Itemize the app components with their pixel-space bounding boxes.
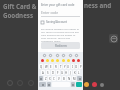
button[interactable]: K — [73, 70, 76, 75]
staticText: T — [60, 65, 62, 69]
button[interactable]: W — [44, 64, 48, 69]
button[interactable]: I — [71, 64, 74, 69]
staticText: Redeem — [55, 44, 67, 48]
staticText: Q — [40, 65, 43, 69]
button[interactable]: Emoji — [77, 59, 80, 62]
button[interactable]: Comma — [47, 82, 51, 87]
staticText: L — [78, 71, 80, 75]
button[interactable]: Emoji — [72, 59, 75, 62]
button[interactable]: Redeem — [41, 42, 80, 49]
button[interactable]: A — [41, 70, 45, 75]
staticText: A — [42, 71, 44, 75]
button[interactable]: O — [75, 64, 78, 69]
staticText: Z — [45, 77, 47, 81]
button[interactable]: C — [52, 76, 56, 81]
staticText: I — [72, 65, 73, 69]
staticText: J — [70, 71, 71, 75]
staticText: H — [65, 71, 68, 75]
button[interactable]: Enter — [76, 82, 82, 87]
button[interactable]: G — [61, 70, 64, 75]
staticText: By clicking Redeem you agree to our term… — [41, 27, 80, 42]
button[interactable]: R — [54, 64, 58, 69]
button[interactable]: Emoji — [41, 59, 44, 62]
button[interactable]: Emoji — [51, 59, 54, 62]
button[interactable]: S — [46, 70, 50, 75]
button[interactable]: Tool 2 — [56, 54, 59, 57]
button[interactable]: Y — [63, 64, 66, 69]
staticText: Goodness — [3, 11, 34, 19]
staticText: B — [63, 77, 65, 81]
button[interactable]: N — [67, 76, 71, 81]
staticText: Y — [64, 65, 66, 69]
button[interactable]: Emoji — [56, 59, 59, 62]
button[interactable]: P — [79, 64, 82, 69]
staticText: V — [58, 77, 60, 81]
staticText: M — [73, 77, 76, 81]
button[interactable]: E — [49, 64, 53, 69]
staticText: S — [47, 71, 49, 75]
staticText: R — [55, 65, 57, 69]
button[interactable]: Saving/Account — [41, 20, 80, 24]
button[interactable]: Tool 3 — [62, 54, 65, 57]
button[interactable]: T — [59, 64, 62, 69]
button[interactable]: Tool 5 — [75, 54, 78, 57]
button[interactable]: J — [69, 70, 72, 75]
button[interactable]: Q — [39, 64, 43, 69]
button[interactable]: D — [51, 70, 55, 75]
button[interactable]: Numbers — [39, 82, 46, 87]
staticText: P — [80, 65, 82, 69]
button[interactable]: X — [48, 76, 51, 81]
button[interactable]: F — [56, 70, 60, 75]
button[interactable]: Tool 1 — [49, 54, 52, 57]
staticText: N — [68, 77, 71, 81]
button[interactable]: Backspace — [77, 76, 82, 81]
staticText: U — [67, 65, 70, 69]
staticText: D — [52, 71, 55, 75]
staticText: Gift Card & — [3, 2, 37, 10]
button[interactable]: Z — [44, 76, 47, 81]
button[interactable]: Tool 4 — [69, 54, 72, 57]
staticText: Saving/Account — [46, 20, 68, 24]
staticText: X — [49, 77, 51, 81]
staticText: O — [75, 65, 78, 69]
staticText: C — [53, 77, 55, 81]
button[interactable]: Tool 0 — [43, 54, 46, 57]
staticText: Enter code — [41, 10, 59, 15]
button[interactable]: B — [62, 76, 66, 81]
button[interactable]: Enter code — [41, 10, 80, 17]
staticText: K — [74, 71, 76, 75]
staticText: E — [50, 65, 52, 69]
staticText: Enter your gift card code — [41, 3, 75, 7]
button[interactable]: Emoji — [109, 34, 118, 43]
staticText: ness and — [84, 1, 112, 9]
button[interactable]: Emoji — [62, 59, 65, 62]
staticText: G — [61, 71, 64, 75]
button[interactable]: Emoji — [67, 59, 70, 62]
button[interactable]: M — [72, 76, 76, 81]
button[interactable]: Period — [71, 82, 75, 87]
button[interactable]: U — [67, 64, 70, 69]
button[interactable]: H — [65, 70, 68, 75]
staticText: F — [57, 71, 59, 75]
button[interactable]: L — [77, 70, 80, 75]
staticText: W — [45, 65, 48, 69]
button[interactable]: V — [57, 76, 61, 81]
button[interactable]: Shift — [39, 76, 43, 81]
button[interactable]: Emoji — [46, 59, 49, 62]
